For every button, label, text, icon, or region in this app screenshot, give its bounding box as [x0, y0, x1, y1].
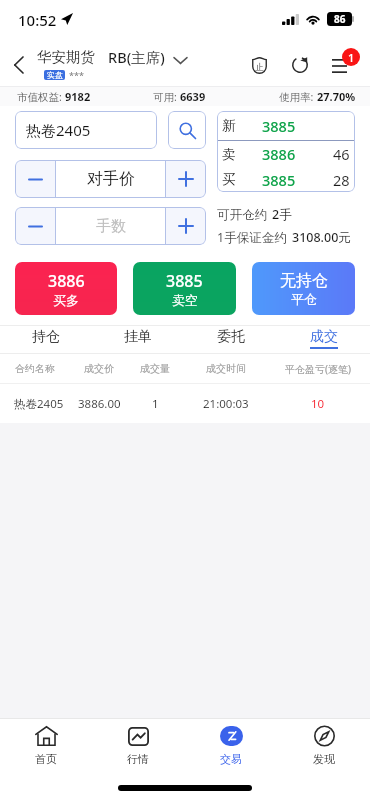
staticText: 交易 — [220, 752, 242, 766]
staticText: 3108.00元 — [292, 229, 351, 246]
button[interactable]: 减少 — [15, 207, 55, 245]
staticText: 卖 — [222, 146, 236, 163]
staticText: RB(主席) — [108, 47, 165, 67]
button[interactable]: 减少 — [15, 160, 55, 198]
staticText: 发现 — [313, 752, 335, 766]
staticText: 86 — [334, 12, 346, 26]
staticText: 实盘 — [47, 70, 63, 80]
button[interactable]: 委托 — [184, 326, 277, 353]
button[interactable]: 增加 — [166, 207, 206, 245]
staticText: 成交时间 — [206, 362, 246, 375]
staticText: 27.70% — [317, 89, 356, 104]
staticText: 委托 — [217, 328, 245, 346]
staticText: 10:52 — [18, 10, 57, 30]
staticText: 2手 — [272, 206, 292, 223]
button[interactable]: 菜单 — [327, 48, 357, 82]
button[interactable]: 对手价 — [56, 160, 165, 198]
staticText: 对手价 — [87, 169, 135, 189]
staticText: 使用率: — [279, 90, 314, 104]
button[interactable]: 刷新 — [285, 50, 315, 80]
staticText: 持仓 — [32, 328, 60, 346]
staticText: 卖空 — [172, 292, 198, 308]
button[interactable]: 止损设置 — [244, 50, 274, 80]
button[interactable]: 交易 — [184, 719, 277, 771]
staticText: 成交 — [310, 328, 338, 346]
staticText: 市值权益: — [17, 90, 62, 104]
button[interactable]: 无持仓 — [252, 262, 355, 315]
button[interactable]: 手数 — [56, 207, 165, 245]
staticText: 46 — [333, 144, 350, 164]
staticText: 21:00:03 — [203, 396, 249, 412]
staticText: 无持仓 — [280, 271, 328, 291]
button[interactable]: 3886 — [15, 262, 117, 315]
button[interactable]: 热卷2405 — [15, 111, 157, 149]
button[interactable]: 首页 — [0, 719, 92, 771]
button[interactable]: 行情 — [92, 719, 184, 771]
button[interactable]: 返回 — [0, 45, 36, 85]
button[interactable]: 挂单 — [92, 326, 184, 353]
staticText: 6639 — [180, 89, 206, 104]
staticText: 3886.00 — [78, 396, 121, 412]
staticText: 10 — [311, 396, 325, 412]
staticText: 3885 — [262, 116, 296, 136]
button[interactable]: 3885 — [133, 262, 236, 315]
staticText: 平仓 — [291, 291, 317, 307]
button[interactable]: 持仓 — [0, 326, 92, 353]
staticText: 买多 — [53, 292, 79, 308]
staticText: 9182 — [65, 89, 91, 104]
button[interactable]: 成交 — [277, 326, 370, 353]
staticText: 新 — [222, 117, 236, 134]
staticText: 成交量 — [140, 362, 170, 375]
staticText: 手数 — [96, 217, 126, 236]
staticText: 行情 — [127, 752, 149, 766]
staticText: 1 — [348, 50, 355, 65]
staticText: 3886 — [48, 270, 85, 292]
staticText: 3885 — [166, 270, 203, 292]
staticText: 平仓盈亏(逐笔) — [285, 362, 351, 376]
staticText: 止 — [255, 61, 264, 72]
staticText: 3885 — [262, 170, 296, 190]
staticText: 可开仓约 — [217, 207, 267, 223]
button[interactable]: 搜索 — [168, 111, 206, 149]
staticText: *** — [69, 69, 84, 81]
staticText: 挂单 — [124, 328, 152, 346]
button[interactable]: 增加 — [166, 160, 206, 198]
staticText: 3886 — [262, 144, 296, 164]
button[interactable]: 发现 — [277, 719, 370, 771]
button[interactable]: 热卷2405 — [15, 384, 358, 423]
staticText: 28 — [333, 170, 350, 190]
staticText: 可用: — [153, 90, 177, 104]
staticText: 首页 — [35, 752, 57, 766]
staticText: 热卷2405 — [14, 396, 64, 412]
staticText: 合约名称 — [15, 362, 55, 375]
staticText: 热卷2405 — [26, 120, 91, 140]
staticText: 买 — [222, 171, 236, 188]
staticText: 1手保证金约 — [217, 229, 287, 246]
staticText: 华安期货 — [37, 48, 95, 66]
staticText: 成交价 — [84, 362, 114, 375]
staticText: 1 — [152, 396, 159, 412]
